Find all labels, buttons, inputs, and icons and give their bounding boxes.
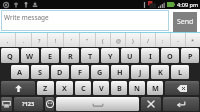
button[interactable]: Settings (141, 97, 161, 111)
button[interactable]: I (141, 48, 159, 63)
button[interactable]: R (61, 48, 79, 63)
staticText: S (38, 67, 43, 77)
button[interactable]: L (171, 65, 189, 79)
staticText: C (81, 83, 86, 93)
staticText: H (117, 67, 123, 77)
button[interactable]: , (0, 33, 15, 47)
button[interactable]: E (41, 48, 59, 63)
staticText: I (149, 51, 152, 61)
staticText: F (78, 67, 83, 77)
staticText: X (62, 83, 67, 93)
staticText: R (68, 51, 73, 61)
button[interactable]: G (91, 65, 109, 79)
staticText: B (117, 83, 122, 93)
button[interactable]: P (181, 48, 199, 63)
button[interactable]: ?123 (14, 97, 43, 111)
button[interactable]: Emoji (45, 97, 54, 111)
button[interactable]: B (111, 81, 127, 95)
staticText: M (152, 83, 159, 93)
button[interactable]: Y (101, 48, 119, 63)
button[interactable]: - (171, 33, 185, 47)
staticText: G (97, 67, 103, 77)
staticText: W (26, 51, 34, 61)
staticText: 4:09 pm (177, 1, 199, 9)
staticText: @ (116, 37, 121, 44)
button[interactable]: @ (111, 33, 125, 47)
button[interactable]: Q (1, 48, 19, 63)
button[interactable]: Shift (1, 81, 35, 95)
staticText: " (86, 37, 89, 44)
button[interactable]: " (80, 33, 95, 47)
button[interactable]: . (16, 33, 31, 47)
button[interactable]: ' (64, 33, 79, 47)
staticText: O (167, 51, 173, 61)
button[interactable]: O (161, 48, 179, 63)
button[interactable]: K (151, 65, 169, 79)
button[interactable]: S (31, 65, 49, 79)
button[interactable]: ? (32, 33, 47, 47)
staticText: ( (102, 37, 104, 44)
button[interactable]: Send (173, 12, 197, 32)
button[interactable]: T (81, 48, 99, 63)
button[interactable]: H (111, 65, 129, 79)
staticText: * (191, 37, 195, 44)
button[interactable]: Backspace (165, 81, 199, 95)
button[interactable]: M (147, 81, 163, 95)
button[interactable]: ( (96, 33, 110, 47)
staticText: ) (132, 37, 134, 44)
button[interactable]: A (11, 65, 29, 79)
button[interactable]: X (56, 81, 73, 95)
staticText: - (177, 37, 179, 44)
button[interactable]: N (129, 81, 145, 95)
button[interactable]: Space (56, 97, 139, 111)
button[interactable]: F (71, 65, 89, 79)
staticText: A (17, 67, 23, 77)
button[interactable]: C (75, 81, 91, 95)
button[interactable]: Write message (1, 10, 169, 31)
staticText: ?123 (22, 100, 35, 108)
staticText: Send (177, 17, 194, 27)
button[interactable]: V (93, 81, 109, 95)
staticText: ? (38, 37, 41, 44)
staticText: T (88, 51, 93, 61)
staticText: ' (71, 37, 73, 44)
button[interactable]: W (21, 48, 39, 63)
button[interactable]: Z (37, 81, 54, 95)
staticText: V (99, 83, 104, 93)
button[interactable]: ) (126, 33, 140, 47)
staticText: . (23, 37, 25, 44)
staticText: J (139, 67, 142, 77)
staticText: L (178, 67, 183, 77)
button[interactable]: U (121, 48, 139, 63)
button[interactable]: Switch input method (1, 97, 12, 111)
button[interactable]: ! (48, 33, 63, 47)
button[interactable]: D (51, 65, 69, 79)
staticText: , (7, 37, 9, 44)
button[interactable]: / (141, 33, 155, 47)
staticText: N (134, 83, 140, 93)
staticText: / (147, 37, 150, 44)
staticText: P (188, 51, 193, 61)
staticText: K (158, 67, 163, 77)
button[interactable]: Enter (163, 97, 199, 111)
staticText: ! (55, 37, 57, 44)
staticText: Q (7, 51, 13, 61)
staticText: D (57, 67, 63, 77)
button[interactable]: : (156, 33, 170, 47)
staticText: U (127, 51, 133, 61)
staticText: Write message (4, 13, 49, 22)
staticText: E (48, 51, 53, 61)
staticText: Z (43, 83, 48, 93)
button[interactable]: J (131, 65, 149, 79)
staticText: Y (108, 51, 113, 61)
button[interactable]: * (186, 33, 200, 47)
staticText: : (162, 37, 164, 44)
